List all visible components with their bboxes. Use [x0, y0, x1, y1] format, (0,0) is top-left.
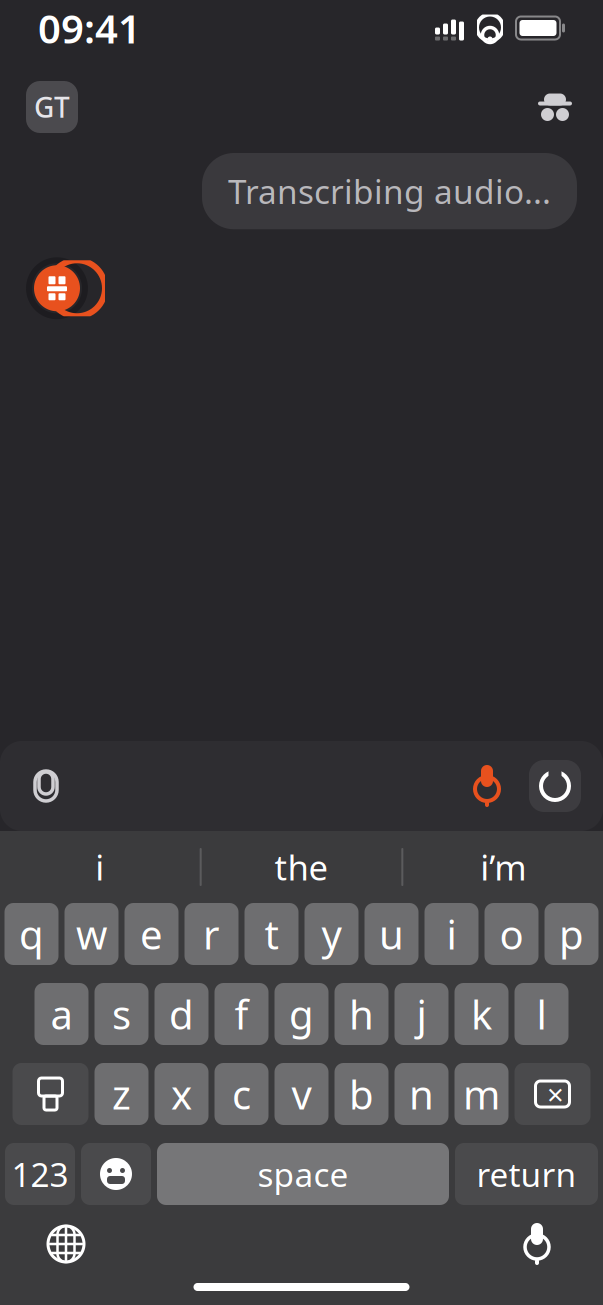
button[interactable]: the [202, 831, 401, 903]
button[interactable]: w [64, 903, 118, 965]
button[interactable]: 123 [5, 1143, 75, 1205]
button[interactable]: Voice input [463, 762, 511, 810]
staticText: g [289, 987, 314, 1040]
staticText: y [321, 907, 341, 960]
staticText: r [203, 907, 220, 960]
button[interactable]: GT [26, 81, 78, 133]
button[interactable]: k [454, 983, 508, 1045]
staticText: space [257, 1152, 348, 1196]
staticText: z [112, 1067, 131, 1120]
button[interactable]: r [184, 903, 238, 965]
staticText: u [379, 907, 404, 960]
button[interactable]: f [214, 983, 268, 1045]
staticText: v [291, 1067, 311, 1120]
staticText: c [232, 1067, 251, 1120]
staticText: x [171, 1067, 192, 1120]
button[interactable]: x [154, 1063, 208, 1125]
button[interactable]: Incognito mode [533, 85, 577, 129]
button[interactable]: Emoji [81, 1143, 151, 1205]
staticText: a [50, 987, 72, 1040]
button[interactable]: c [214, 1063, 268, 1125]
button[interactable]: Shift [12, 1063, 88, 1125]
button[interactable]: s [94, 983, 148, 1045]
button[interactable]: q [4, 903, 58, 965]
button[interactable]: m [454, 1063, 508, 1125]
staticText: q [19, 907, 44, 960]
staticText: Transcribing audio... [228, 169, 551, 213]
staticText: o [499, 907, 523, 960]
staticText: e [140, 907, 163, 960]
button[interactable]: d [154, 983, 208, 1045]
staticText: f [234, 987, 248, 1040]
staticText: d [169, 987, 194, 1040]
staticText: k [471, 987, 492, 1040]
button[interactable]: p [544, 903, 598, 965]
button[interactable]: h [334, 983, 388, 1045]
button[interactable]: o [484, 903, 538, 965]
button[interactable]: i’m [403, 831, 603, 903]
staticText: s [112, 987, 131, 1040]
button[interactable]: Dictate [509, 1216, 565, 1272]
staticText: h [349, 987, 374, 1040]
button[interactable]: space [157, 1143, 449, 1205]
button[interactable]: i [0, 831, 200, 903]
staticText: t [264, 907, 278, 960]
staticText: n [409, 1067, 434, 1120]
button[interactable]: Attach file [22, 762, 70, 810]
staticText: i’m [480, 844, 526, 890]
button[interactable]: return [455, 1143, 598, 1205]
button[interactable]: j [394, 983, 448, 1045]
button[interactable]: e [124, 903, 178, 965]
staticText: return [476, 1152, 576, 1196]
staticText: j [416, 987, 426, 1040]
button[interactable]: Delete [514, 1063, 590, 1125]
button[interactable]: z [94, 1063, 148, 1125]
staticText: w [76, 907, 107, 960]
button[interactable]: Next keyboard [38, 1216, 94, 1272]
button[interactable]: Sending [529, 760, 581, 812]
staticText: the [274, 844, 328, 890]
button[interactable]: v [274, 1063, 328, 1125]
button[interactable]: t [244, 903, 298, 965]
staticText: p [559, 907, 584, 960]
staticText: b [349, 1067, 374, 1120]
staticText: GT [34, 88, 70, 126]
staticText: 123 [11, 1152, 68, 1196]
button[interactable]: b [334, 1063, 388, 1125]
button[interactable]: i [424, 903, 478, 965]
staticText: × [547, 1074, 564, 1113]
button[interactable]: g [274, 983, 328, 1045]
button[interactable]: a [34, 983, 88, 1045]
staticText: i [95, 844, 104, 890]
button[interactable]: u [364, 903, 418, 965]
staticText: m [463, 1067, 500, 1120]
staticText: 09:41 [38, 1, 141, 54]
button[interactable]: n [394, 1063, 448, 1125]
button[interactable]: l [514, 983, 568, 1045]
staticText: i [446, 907, 456, 960]
button[interactable]: y [304, 903, 358, 965]
staticText: l [536, 987, 546, 1040]
